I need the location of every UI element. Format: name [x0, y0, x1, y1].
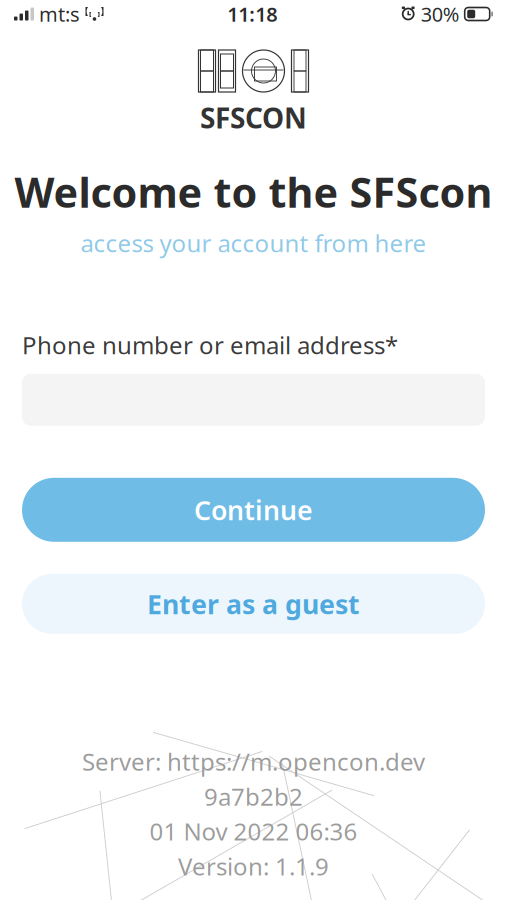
- staticText: 30%: [421, 1, 460, 27]
- staticText: Version: 1.1.9: [178, 850, 329, 882]
- staticText: access your account from here: [80, 227, 426, 259]
- staticText: Enter as a guest: [147, 586, 360, 621]
- staticText: 9a7b2b2: [204, 780, 303, 812]
- button[interactable]: Continue: [22, 478, 485, 542]
- staticText: Continue: [194, 492, 313, 527]
- staticText: Server: https://m.opencon.dev: [82, 745, 425, 777]
- staticText: 01 Nov 2022 06:36: [149, 815, 357, 847]
- staticText: SFSCON: [200, 99, 307, 136]
- staticText: 11:18: [227, 1, 277, 27]
- staticText: Phone number or email address*: [22, 329, 398, 361]
- button[interactable]: Enter as a guest: [22, 574, 485, 634]
- staticText: Welcome to the SFScon: [14, 164, 492, 219]
- staticText: mt:s: [39, 1, 80, 27]
